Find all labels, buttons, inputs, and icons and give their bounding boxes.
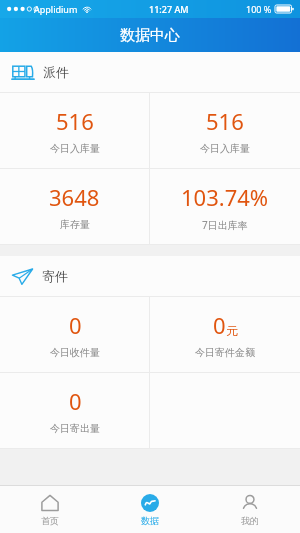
staticText: 库存量 xyxy=(60,218,90,231)
staticText: 首页 xyxy=(41,515,59,526)
button[interactable]: 516 xyxy=(150,93,300,168)
staticText: 派件 xyxy=(43,64,69,80)
staticText: Applidium xyxy=(34,3,78,15)
staticText: 0 xyxy=(69,386,82,416)
staticText: 0 xyxy=(213,310,226,340)
staticText: 516 xyxy=(56,106,94,136)
button[interactable]: 数据 xyxy=(100,486,200,533)
staticText: 我的 xyxy=(241,515,259,526)
button[interactable]: 首页 xyxy=(0,486,100,533)
staticText: 数据 xyxy=(141,515,159,526)
button[interactable]: 派件 xyxy=(0,52,300,92)
button[interactable]: 我的 xyxy=(200,486,300,533)
button[interactable]: 516 xyxy=(0,93,149,168)
button[interactable]: 0 xyxy=(0,373,149,448)
staticText: 今日收件量 xyxy=(50,346,100,359)
staticText: 今日入库量 xyxy=(50,142,100,155)
staticText: 11:27 AM xyxy=(149,3,189,15)
staticText: 今日寄件金额 xyxy=(195,346,255,359)
other: 派件 xyxy=(12,64,34,81)
button[interactable]: 103.74% xyxy=(150,169,300,244)
button[interactable]: 0 xyxy=(150,297,300,372)
button[interactable]: 寄件 xyxy=(0,256,300,296)
staticText: 今日寄出量 xyxy=(50,422,100,435)
staticText: 3648 xyxy=(49,182,100,212)
staticText: 今日入库量 xyxy=(200,142,250,155)
staticText: 0 xyxy=(69,310,82,340)
staticText: 数据中心 xyxy=(120,26,180,45)
staticText: 103.74% xyxy=(181,182,269,212)
other: 寄件 xyxy=(12,268,33,285)
button[interactable]: 3648 xyxy=(0,169,149,244)
button[interactable]: 0 xyxy=(0,297,149,372)
staticText: 100 % xyxy=(246,3,272,15)
staticText: 516 xyxy=(206,106,244,136)
staticText: 7日出库率 xyxy=(202,218,248,232)
staticText: 寄件 xyxy=(42,268,68,284)
staticText: 元 xyxy=(226,323,238,338)
